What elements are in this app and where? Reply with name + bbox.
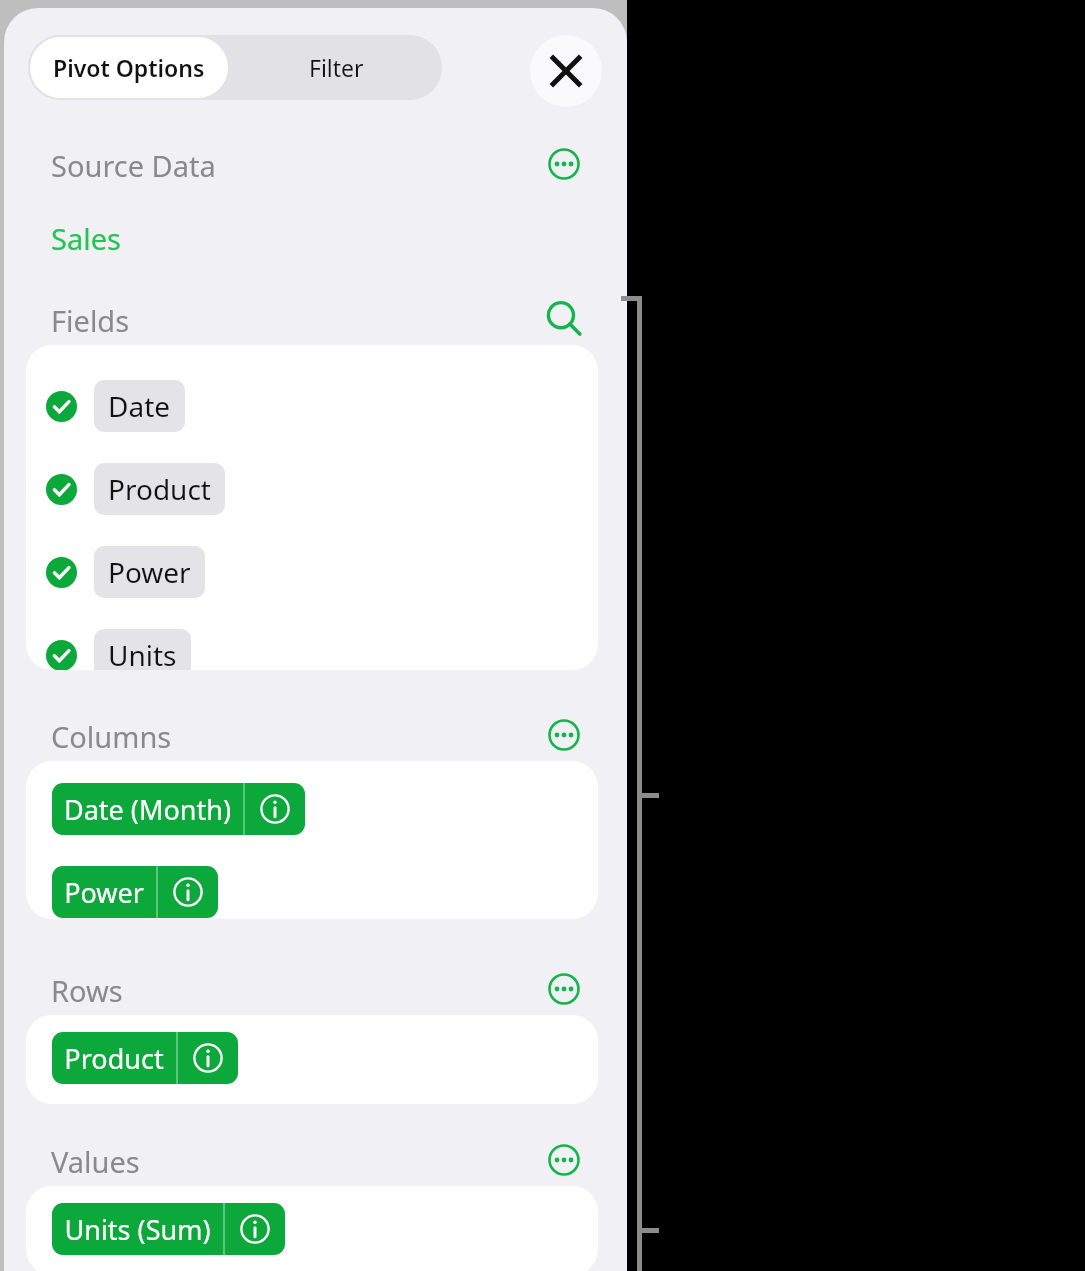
button[interactable]: Values options — [534, 1138, 594, 1182]
staticText: Date (Month) — [64, 791, 231, 828]
button[interactable]: Product — [26, 462, 598, 516]
button[interactable]: Product — [52, 1032, 238, 1084]
button[interactable]: Close — [530, 35, 602, 107]
button[interactable]: Units (Sum) — [52, 1203, 285, 1255]
staticText: Columns — [51, 717, 172, 756]
staticText: Fields — [51, 301, 130, 340]
staticText: Power — [108, 553, 191, 591]
staticText: Values — [51, 1142, 140, 1181]
other: Info Date (Month) — [245, 783, 305, 835]
button[interactable]: Pivot Options — [30, 37, 228, 98]
other: Info Units (Sum) — [225, 1203, 285, 1255]
staticText: Sales — [51, 219, 121, 258]
button[interactable]: Date — [26, 379, 598, 433]
staticText: Product — [64, 1040, 164, 1077]
button[interactable]: Rows options — [534, 967, 594, 1011]
staticText: Source Data — [51, 146, 216, 185]
other: Info Power — [158, 866, 218, 918]
staticText: Units — [108, 636, 177, 670]
button[interactable]: Filter — [230, 35, 442, 100]
button[interactable]: Sales — [51, 219, 121, 258]
button[interactable]: Date (Month) — [52, 783, 305, 835]
staticText: Pivot Options — [53, 52, 205, 83]
staticText: Power — [64, 874, 144, 911]
button[interactable]: Columns options — [534, 713, 594, 757]
staticText: Rows — [51, 971, 123, 1010]
button[interactable]: Search fields — [534, 297, 594, 341]
button[interactable]: Power — [52, 866, 218, 918]
staticText: Date — [108, 387, 171, 425]
button[interactable]: Power — [26, 545, 598, 599]
button[interactable]: Units — [26, 628, 598, 670]
staticText: Units (Sum) — [64, 1211, 211, 1248]
staticText: Filter — [309, 52, 364, 83]
other: Info Product — [178, 1032, 238, 1084]
button[interactable]: Source Data options — [534, 142, 594, 186]
staticText: Product — [108, 470, 211, 508]
